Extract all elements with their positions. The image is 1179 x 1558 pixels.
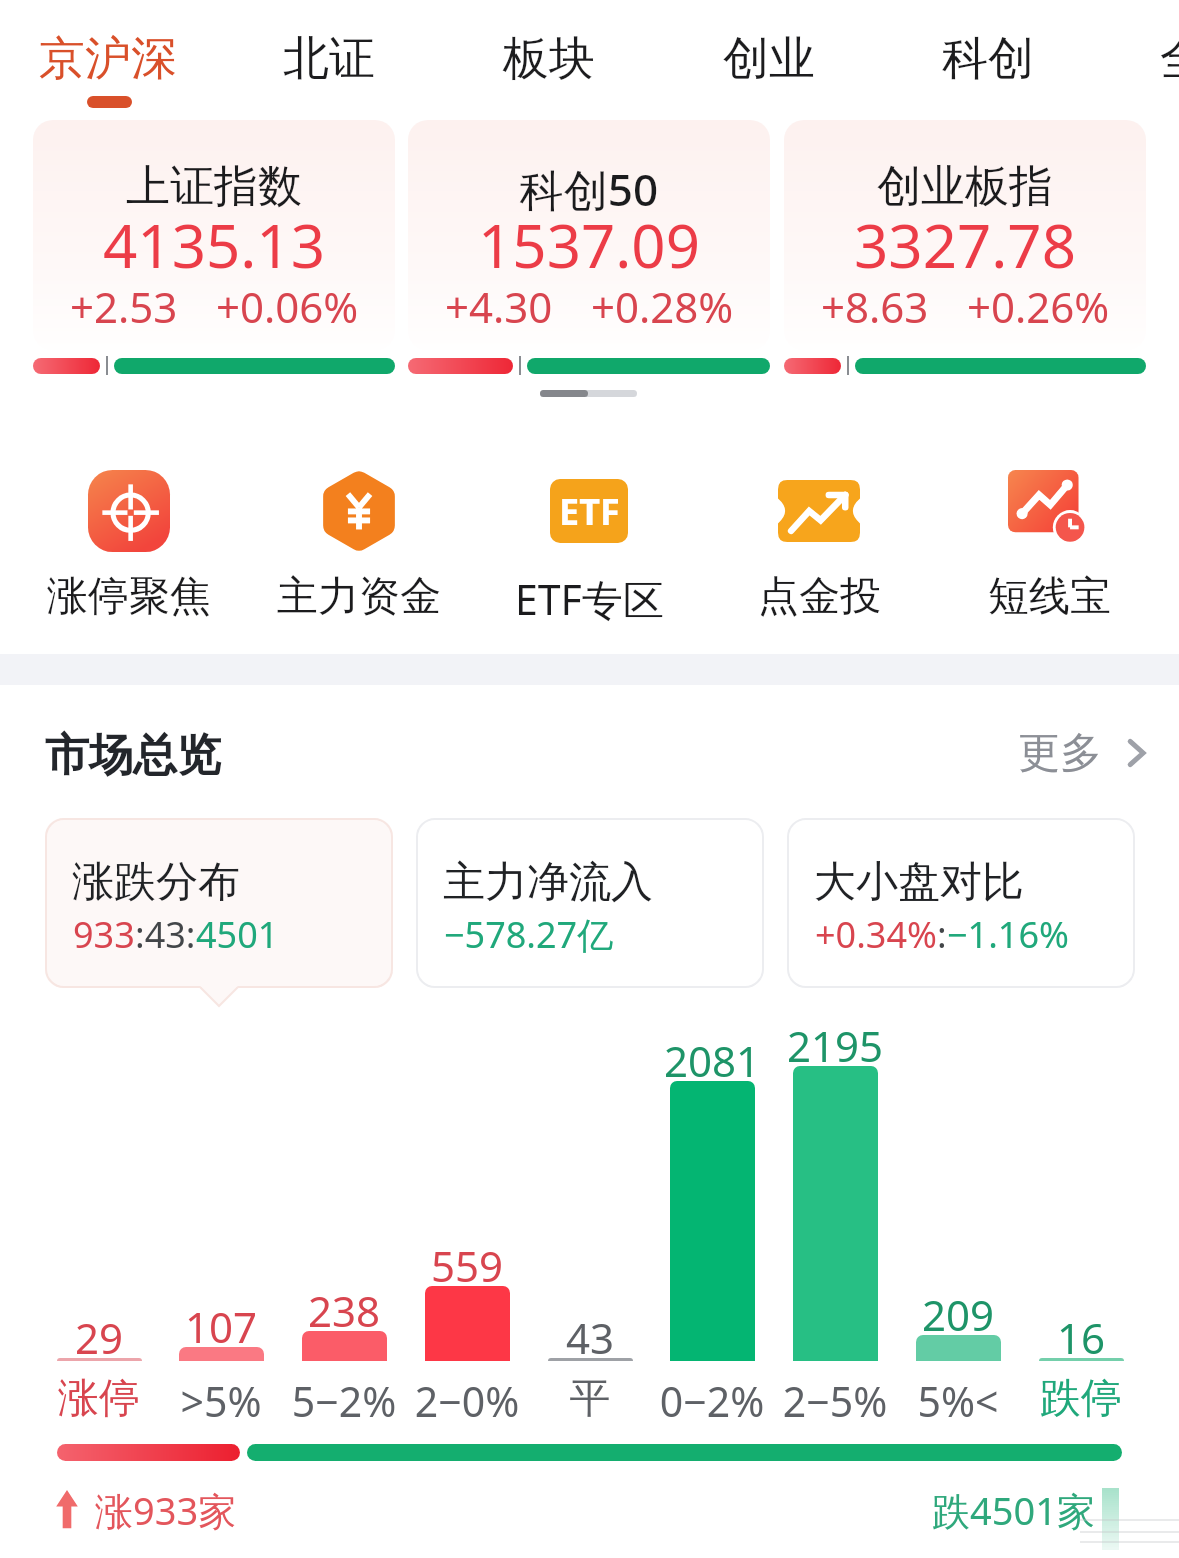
- staticText: 2−5%: [755, 1373, 915, 1429]
- staticText: 跌停: [1001, 1373, 1161, 1425]
- staticText: 涨跌分布: [72, 856, 240, 909]
- button[interactable]: ETF专区: [479, 468, 699, 653]
- button[interactable]: 5−2%: [283, 1030, 405, 1420]
- button[interactable]: 更多: [1018, 726, 1158, 780]
- staticText: 2195: [760, 1017, 910, 1074]
- staticText: +0.06%: [216, 278, 359, 335]
- staticText: 29: [24, 1309, 174, 1366]
- button[interactable]: 跌停: [1020, 1030, 1142, 1420]
- staticText: ETF专区: [515, 571, 664, 627]
- button[interactable]: 京沪深: [3, 0, 213, 95]
- staticText: 5−2%: [264, 1373, 424, 1429]
- staticText: 平: [510, 1373, 670, 1425]
- button[interactable]: 板块: [444, 0, 654, 95]
- button[interactable]: 上证指数: [33, 120, 395, 376]
- staticText: :: [937, 910, 947, 959]
- button[interactable]: 5%<: [897, 1030, 1019, 1420]
- staticText: 107: [146, 1298, 296, 1355]
- staticText: 短线宝: [988, 571, 1111, 623]
- staticText: +8.63: [821, 278, 929, 335]
- button[interactable]: 2−0%: [406, 1030, 528, 1420]
- button[interactable]: 科创: [883, 0, 1093, 95]
- button[interactable]: 平: [529, 1030, 651, 1420]
- button[interactable]: 2−5%: [774, 1030, 896, 1420]
- staticText: −1.16%: [947, 910, 1069, 959]
- staticText: −578.27亿: [444, 910, 614, 959]
- staticText: 主力资金: [277, 571, 441, 623]
- button[interactable]: 创业板指: [784, 120, 1146, 376]
- staticText: 4135.13: [33, 204, 395, 286]
- staticText: 北证: [283, 30, 375, 88]
- staticText: 0−2%: [632, 1373, 792, 1429]
- button[interactable]: 短线宝: [939, 468, 1159, 653]
- staticText: 跌4501家: [932, 1484, 1095, 1536]
- staticText: 点金投: [758, 571, 881, 623]
- staticText: 主力净流入: [443, 856, 653, 909]
- staticText: +2.53: [70, 278, 178, 335]
- staticText: +0.28%: [591, 278, 734, 335]
- staticText: 4501: [196, 910, 279, 959]
- staticText: 933: [73, 910, 135, 959]
- staticText: +4.30: [445, 278, 553, 335]
- staticText: 创业: [723, 30, 815, 88]
- button[interactable]: 涨停: [38, 1030, 160, 1420]
- staticText: 上证指数: [33, 159, 395, 214]
- staticText: 16: [1006, 1309, 1156, 1366]
- staticText: ETF: [559, 487, 620, 536]
- staticText: 涨933家: [95, 1484, 237, 1536]
- staticText: 238: [269, 1282, 419, 1339]
- staticText: 2081: [637, 1032, 787, 1089]
- staticText: :43:: [135, 910, 196, 959]
- staticText: +0.26%: [967, 278, 1110, 335]
- staticText: 43: [515, 1309, 665, 1366]
- staticText: 涨停聚焦: [47, 571, 211, 623]
- staticText: 559: [392, 1237, 542, 1294]
- button[interactable]: 涨停聚焦: [19, 468, 239, 653]
- button[interactable]: 创业: [664, 0, 874, 95]
- staticText: 创业板指: [784, 159, 1146, 214]
- staticText: 209: [883, 1286, 1033, 1343]
- staticText: +0.34%: [815, 910, 937, 959]
- staticText: 3327.78: [784, 204, 1146, 286]
- staticText: 5%<: [878, 1373, 1038, 1429]
- staticText: 板块: [503, 30, 595, 88]
- button[interactable]: 主力资金: [249, 468, 469, 653]
- button[interactable]: 科创50: [408, 120, 770, 376]
- button[interactable]: 0−2%: [651, 1030, 773, 1420]
- staticText: 科创50: [408, 159, 770, 219]
- button[interactable]: 北证: [224, 0, 434, 95]
- staticText: 市场总览: [45, 728, 221, 783]
- button[interactable]: 点金投: [709, 468, 929, 653]
- staticText: 全: [1160, 30, 1179, 88]
- staticText: 1537.09: [408, 204, 770, 286]
- staticText: 大小盘对比: [814, 856, 1024, 909]
- staticText: >5%: [141, 1373, 301, 1429]
- button[interactable]: >5%: [160, 1030, 282, 1420]
- staticText: 2−0%: [387, 1373, 547, 1429]
- staticText: 更多: [1018, 727, 1102, 780]
- button[interactable]: 全: [1078, 0, 1179, 95]
- staticText: 科创: [942, 30, 1034, 88]
- button[interactable]: [416, 818, 764, 988]
- staticText: 京沪深: [39, 30, 177, 88]
- staticText: 涨停: [19, 1373, 179, 1425]
- button[interactable]: [45, 818, 393, 988]
- button[interactable]: [787, 818, 1135, 988]
